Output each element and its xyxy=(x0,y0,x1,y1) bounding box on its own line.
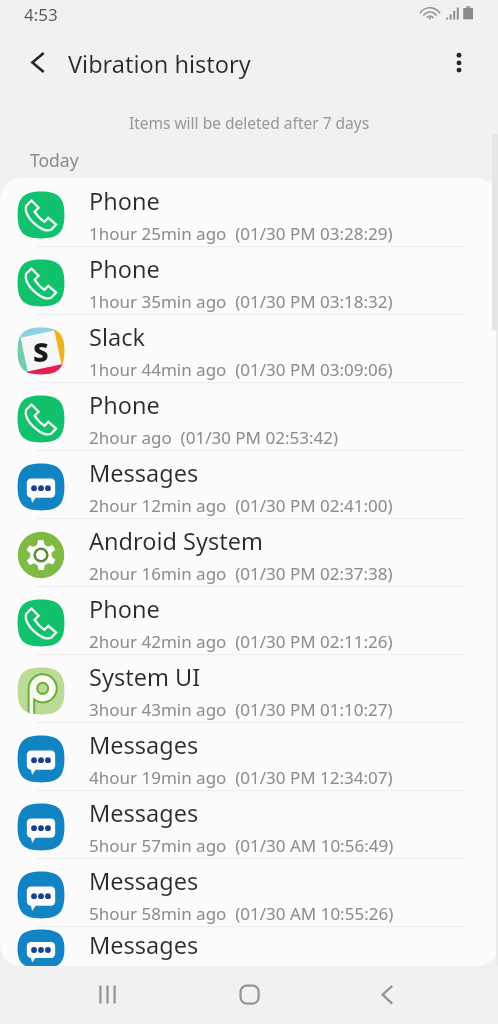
button[interactable]: System UI xyxy=(0,655,498,723)
staticText: 5hour 57min ago (01/30 AM 10:56:49) xyxy=(89,834,394,857)
staticText: 2hour 16min ago (01/30 PM 02:37:38) xyxy=(89,562,393,585)
button[interactable]: Phone xyxy=(0,383,498,451)
staticText: S xyxy=(33,333,49,370)
staticText: 1hour 25min ago (01/30 PM 03:28:29) xyxy=(89,222,393,245)
staticText: Phone xyxy=(89,593,160,625)
button[interactable]: Messages xyxy=(0,927,498,967)
staticText: Vibration history xyxy=(68,48,251,80)
button[interactable]: More options xyxy=(436,40,482,86)
staticText: 2hour ago (01/30 PM 02:53:42) xyxy=(89,426,338,449)
button[interactable]: Phone xyxy=(0,587,498,655)
button[interactable]: Navigate up xyxy=(15,40,61,86)
staticText: 5hour 58min ago (01/30 AM 10:55:26) xyxy=(89,902,394,925)
staticText: Today xyxy=(30,148,79,172)
button[interactable]: Messages xyxy=(0,451,498,519)
staticText: Messages xyxy=(89,729,199,761)
staticText: 2hour 42min ago (01/30 PM 02:11:26) xyxy=(89,630,393,653)
button[interactable]: Messages xyxy=(0,859,498,927)
staticText: 1hour 35min ago (01/30 PM 03:18:32) xyxy=(89,290,393,313)
staticText: Phone xyxy=(89,185,160,217)
button[interactable]: Back xyxy=(365,972,410,1017)
button[interactable]: Recent apps xyxy=(86,972,131,1017)
button[interactable]: Home xyxy=(226,972,271,1017)
button[interactable]: S xyxy=(0,315,498,383)
staticText: Phone xyxy=(89,253,160,285)
staticText: System UI xyxy=(89,661,201,693)
button[interactable]: Messages xyxy=(0,723,498,791)
staticText: Messages xyxy=(89,457,199,489)
button[interactable]: Phone xyxy=(0,179,498,247)
staticText: Android System xyxy=(89,525,263,557)
button[interactable]: Messages xyxy=(0,791,498,859)
staticText: Slack xyxy=(89,321,145,353)
staticText: 2hour 12min ago (01/30 PM 02:41:00) xyxy=(89,494,393,517)
button[interactable]: Phone xyxy=(0,247,498,315)
staticText: 4hour 19min ago (01/30 PM 12:34:07) xyxy=(89,766,393,789)
staticText: 3hour 43min ago (01/30 PM 01:10:27) xyxy=(89,698,393,721)
staticText: 1hour 44min ago (01/30 PM 03:09:06) xyxy=(89,358,393,381)
staticText: Items will be deleted after 7 days xyxy=(0,112,498,133)
staticText: Messages xyxy=(89,929,199,961)
staticText: Messages xyxy=(89,797,199,829)
button[interactable]: Android System xyxy=(0,519,498,587)
staticText: 4:53 xyxy=(24,3,58,26)
staticText: Messages xyxy=(89,865,199,897)
staticText: Phone xyxy=(89,389,160,421)
